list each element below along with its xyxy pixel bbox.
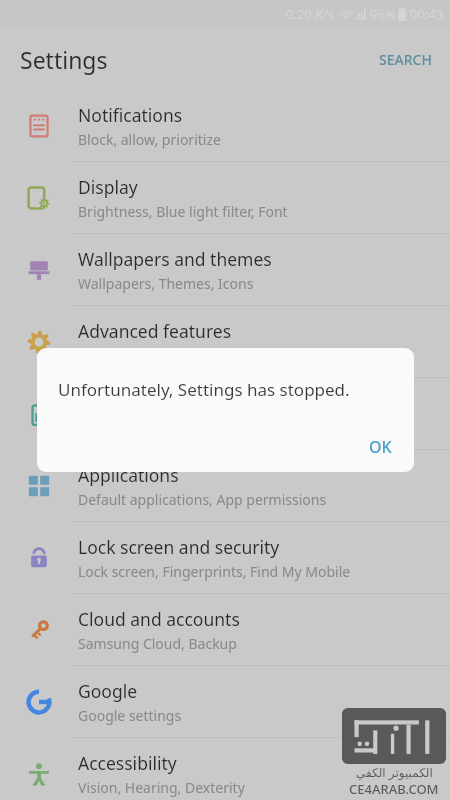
- staticText: SEARCH: [379, 50, 432, 69]
- staticText: Google settings: [78, 706, 182, 725]
- staticText: Block, allow, prioritize: [78, 130, 221, 149]
- button[interactable]: Wallpapers and themes: [0, 234, 450, 306]
- button[interactable]: Google: [0, 666, 450, 738]
- button[interactable]: Device maintenance: [0, 378, 450, 450]
- staticText: Cloud and accounts: [78, 607, 240, 631]
- button[interactable]: Cloud and accounts: [0, 594, 450, 666]
- button[interactable]: Display: [0, 162, 450, 234]
- staticText: Google: [78, 679, 138, 703]
- staticText: Vision, Hearing, Dexterity: [78, 778, 245, 797]
- button[interactable]: Accessibility: [0, 738, 450, 800]
- staticText: Advanced features: [78, 319, 232, 343]
- staticText: Wallpapers and themes: [78, 247, 272, 271]
- staticText: Notifications: [78, 103, 183, 127]
- staticText: الكمبيوتر الكفي: [356, 764, 433, 780]
- staticText: Display: [78, 175, 138, 199]
- staticText: Accessibility: [78, 751, 177, 775]
- staticText: Wallpapers, Themes, Icons: [78, 274, 254, 293]
- staticText: Lock screen, Fingerprints, Find My Mobil…: [78, 562, 351, 581]
- button[interactable]: Applications: [0, 450, 450, 522]
- staticText: OK: [369, 436, 392, 458]
- staticText: Samsung Cloud, Backup: [78, 634, 237, 653]
- staticText: 0.20 K/s: [286, 5, 335, 23]
- button[interactable]: Notifications: [0, 90, 450, 162]
- staticText: Device maintenance: [78, 391, 244, 415]
- staticText: Applications: [78, 463, 179, 487]
- button[interactable]: SEARCH: [361, 38, 450, 81]
- button[interactable]: OK: [347, 422, 414, 472]
- staticText: Lock screen and security: [78, 535, 280, 559]
- button[interactable]: Advanced features: [0, 306, 450, 378]
- staticText: 96%: [370, 5, 396, 23]
- staticText: CE4ARAB.COM: [349, 780, 439, 798]
- button[interactable]: Lock screen and security: [0, 522, 450, 594]
- staticText: Unfortunately, Settings has stopped.: [58, 378, 350, 401]
- staticText: Games, One-handed operation: [78, 346, 282, 365]
- staticText: Settings: [20, 44, 108, 75]
- staticText: Brightness, Blue light filter, Font: [78, 202, 288, 221]
- staticText: Default applications, App permissions: [78, 490, 327, 509]
- staticText: 00:43: [410, 5, 444, 23]
